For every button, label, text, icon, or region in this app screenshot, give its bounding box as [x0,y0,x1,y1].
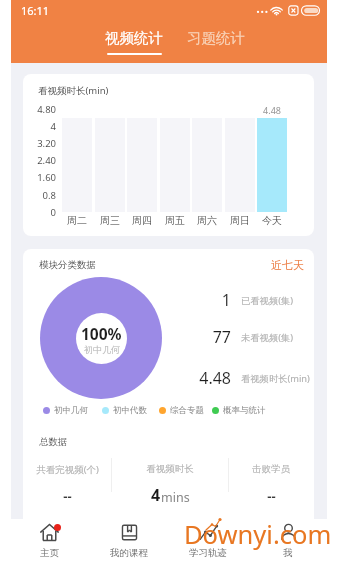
staticText: 0 [50,206,56,219]
staticText: 周五 [165,214,185,227]
staticText: 1.60 [37,171,56,184]
staticText: 周二 [67,214,87,227]
staticText: 看视频时长(min) [241,372,310,385]
staticText: 100% [81,323,122,344]
staticText: Downyi.com [184,517,332,552]
staticText: 77 [212,326,231,348]
staticText: 4.48 [263,104,281,116]
staticText: 1 [221,289,231,311]
staticText: 已看视频(集) [241,294,294,307]
staticText: 3.20 [37,137,56,150]
button[interactable]: 近七天 [265,254,310,275]
staticText: 综合专题 [170,405,204,416]
staticText: 4.80 [37,103,56,116]
button[interactable]: Me [249,519,327,563]
staticText: -- [267,487,276,505]
button[interactable]: 视频统计 [99,29,169,55]
button[interactable]: Home [10,519,88,563]
staticText: 周四 [132,214,152,227]
staticText: 看视频时长 [146,463,194,475]
staticText: 0.8 [42,189,56,202]
staticText: 初中几何 [84,344,120,355]
staticText: 共看完视频(个) [36,463,99,476]
staticText: 未看视频(集) [241,331,294,344]
staticText: 4 [151,484,161,506]
staticText: 习题统计 [187,29,245,47]
staticText: 4.48 [199,367,231,389]
staticText: 我的课程 [110,547,148,559]
button[interactable]: 习题统计 [181,29,251,47]
staticText: mins [161,489,190,506]
button[interactable]: Study track [169,519,247,563]
staticText: 近七天 [271,258,304,272]
staticText: 总数据 [39,436,68,448]
staticText: 16:11 [21,3,50,18]
staticText: 学习轨迹 [189,547,227,559]
staticText: 初中几何 [54,405,88,416]
staticText: 今天 [262,214,282,227]
staticText: 周日 [230,214,250,227]
staticText: 模块分类数据 [39,259,96,271]
staticText: 主页 [40,547,59,559]
button[interactable]: My courses [90,519,168,563]
staticText: 击败学员 [252,463,290,475]
staticText: 视频统计 [105,29,163,47]
staticText: 初中代数 [113,405,147,416]
staticText: 周三 [100,214,120,227]
staticText: 2.40 [37,154,56,167]
staticText: -- [63,487,72,505]
staticText: 4 [50,120,56,133]
staticText: 我 [283,547,293,559]
staticText: 周六 [197,214,217,227]
staticText: 概率与统计 [223,405,266,416]
staticText: 看视频时长(min) [38,84,109,97]
